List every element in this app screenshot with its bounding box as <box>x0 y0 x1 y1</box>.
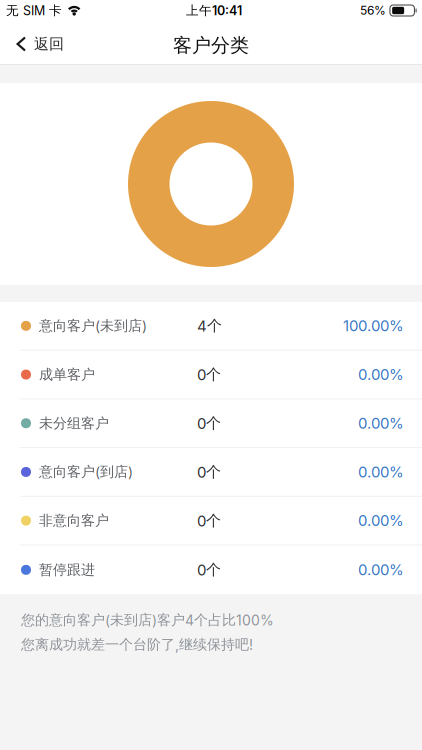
staticText: 无 SIM 卡 <box>6 3 62 18</box>
staticText: 暂停跟进 <box>39 561 95 579</box>
staticText: 0.00% <box>358 365 404 384</box>
staticText: 0个 <box>197 414 221 433</box>
staticText: 意向客户(未到店) <box>39 317 147 335</box>
staticText: 0个 <box>197 560 221 579</box>
staticText: 0.00% <box>358 463 404 481</box>
button[interactable]: 返回 <box>0 21 74 63</box>
staticText: 56% <box>360 3 386 18</box>
staticText: 100.00% <box>343 317 404 335</box>
staticText: 0个 <box>197 462 221 481</box>
staticText: 返回 <box>34 35 64 53</box>
staticText: 非意向客户 <box>39 512 109 529</box>
staticText: 成单客户 <box>39 366 95 383</box>
staticText: 0.00% <box>358 561 404 579</box>
staticText: 意向客户(到店) <box>39 463 133 481</box>
staticText: 未分组客户 <box>39 414 109 432</box>
staticText: 4个 <box>197 316 222 335</box>
staticText: 0个 <box>197 511 221 530</box>
staticText: 您离成功就差一个台阶了,继续保持吧! <box>21 636 253 653</box>
staticText: 0个 <box>197 365 221 384</box>
staticText: 您的意向客户(未到店)客户4个占比100% <box>21 611 274 629</box>
staticText: 上午10:41 <box>186 3 242 18</box>
staticText: 0.00% <box>358 512 404 530</box>
staticText: 客户分类 <box>173 33 249 57</box>
staticText: 0.00% <box>358 414 404 432</box>
